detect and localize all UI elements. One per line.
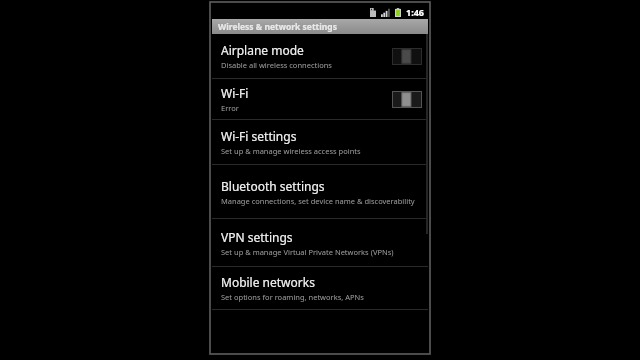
staticText: VPN settings [221, 229, 293, 245]
staticText: Set options for roaming, networks, APNs [221, 292, 364, 302]
staticText: Wireless & network settings [218, 21, 337, 33]
button[interactable]: VPN settings [212, 219, 428, 266]
staticText: Disable all wireless connections [221, 60, 332, 70]
staticText: Wi-Fi [221, 85, 249, 101]
button[interactable]: Bluetooth settings [212, 165, 428, 218]
button[interactable]: Toggle [392, 91, 422, 108]
button[interactable]: Toggle [392, 48, 422, 65]
staticText: Mobile networks [221, 274, 315, 290]
button[interactable]: Airplane mode [212, 34, 428, 78]
staticText: Manage connections, set device name & di… [221, 196, 415, 206]
staticText: Bluetooth settings [221, 178, 325, 194]
staticText: Set up & manage wireless access points [221, 146, 361, 156]
button[interactable]: Mobile networks [212, 267, 428, 309]
button[interactable]: Wi-Fi [212, 79, 428, 119]
button[interactable]: Wi-Fi settings [212, 120, 428, 164]
staticText: Wi-Fi settings [221, 128, 297, 144]
staticText: Set up & manage Virtual Private Networks… [221, 247, 394, 257]
staticText: Airplane mode [221, 42, 304, 58]
staticText: 1:46 [406, 6, 424, 18]
staticText: Error [221, 103, 239, 113]
